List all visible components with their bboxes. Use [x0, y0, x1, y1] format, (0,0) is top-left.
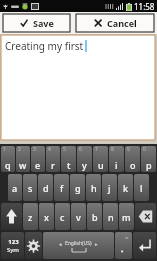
button[interactable]: f [54, 174, 69, 201]
staticText: 4 [48, 146, 51, 153]
staticText: t [67, 159, 71, 171]
staticText: u [98, 159, 104, 171]
button[interactable]: Shift [1, 203, 22, 230]
staticText: c [60, 211, 65, 223]
button[interactable]: x [39, 203, 54, 230]
button[interactable]: 8 [109, 146, 124, 172]
staticText: 7 [95, 146, 98, 153]
staticText: s [28, 182, 33, 194]
button[interactable]: Creating my first [1, 35, 155, 140]
button[interactable]: 1 [1, 146, 15, 172]
staticText: i [115, 159, 118, 171]
staticText: 5 [63, 146, 66, 153]
button[interactable]: Enter [133, 232, 156, 259]
staticText: Cancel [107, 17, 137, 29]
button[interactable]: Cancel [76, 14, 154, 32]
button[interactable]: 4 [46, 146, 60, 172]
button[interactable]: n [103, 203, 118, 230]
button[interactable]: k [118, 174, 133, 201]
staticText: 0 [143, 146, 146, 153]
staticText: Save [33, 17, 54, 29]
button[interactable]: ◂ [43, 232, 114, 259]
staticText: q [5, 159, 11, 171]
staticText: 2 [18, 146, 21, 153]
button[interactable]: 6 [77, 146, 92, 172]
button[interactable]: a [8, 174, 22, 201]
staticText: ▸ [95, 241, 98, 247]
staticText: 1 [3, 146, 6, 153]
staticText: Creating my first [5, 39, 84, 53]
staticText: z [28, 211, 33, 223]
staticText: j [108, 182, 111, 194]
button[interactable]: 5 [61, 146, 76, 172]
staticText: a [12, 182, 18, 194]
staticText: English(US) [65, 240, 92, 247]
button[interactable]: Save [3, 14, 70, 32]
button[interactable]: d [38, 174, 53, 201]
staticText: y [82, 159, 87, 171]
button[interactable]: 7 [93, 146, 108, 172]
button[interactable]: 3 [31, 146, 45, 172]
button[interactable]: c [55, 203, 70, 230]
button[interactable]: 0 [141, 146, 156, 172]
button[interactable]: j [102, 174, 117, 201]
staticText: b [92, 211, 98, 223]
button[interactable]: Period [115, 232, 132, 259]
staticText: v [76, 211, 81, 223]
staticText: 8 [111, 146, 114, 153]
staticText: m [122, 211, 131, 223]
staticText: 3 [33, 146, 36, 153]
button[interactable]: Backspace [135, 203, 156, 230]
staticText: h [91, 182, 97, 194]
staticText: x [44, 211, 49, 223]
staticText: 123 [8, 238, 19, 246]
staticText: o [130, 159, 136, 171]
staticText: Sym [7, 246, 19, 254]
button[interactable]: 123 [1, 232, 24, 259]
button[interactable]: m [119, 203, 134, 230]
staticText: e [35, 159, 41, 171]
button[interactable]: l [134, 174, 149, 201]
button[interactable]: v [71, 203, 86, 230]
button[interactable]: 9 [125, 146, 140, 172]
staticText: p [146, 159, 152, 171]
staticText: l [140, 182, 143, 194]
staticText: w [19, 159, 27, 171]
button[interactable]: Settings [25, 232, 42, 259]
button[interactable]: g [70, 174, 85, 201]
staticText: ◂ [59, 241, 62, 247]
staticText: r [51, 159, 55, 171]
button[interactable]: h [86, 174, 101, 201]
staticText: 11:58 [134, 1, 155, 12]
staticText: d [43, 182, 49, 194]
staticText: f [60, 182, 64, 194]
staticText: n [108, 211, 114, 223]
staticText: 9 [127, 146, 130, 153]
button[interactable]: s [23, 174, 37, 201]
button[interactable]: b [87, 203, 102, 230]
staticText: 6 [79, 146, 82, 153]
staticText: g [75, 182, 81, 194]
button[interactable]: 2 [16, 146, 30, 172]
staticText: k [123, 182, 129, 194]
button[interactable]: z [23, 203, 38, 230]
